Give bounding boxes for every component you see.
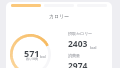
button[interactable]: カロリー (6, 2, 112, 68)
staticText: 2403 (68, 38, 88, 50)
staticText: カロリー (49, 13, 70, 19)
staticText: 残り消費 (26, 57, 39, 61)
staticText: 2974 (68, 60, 88, 68)
staticText: 消費量 (68, 53, 80, 58)
button[interactable] (11, 4, 41, 7)
staticText: 摂取カロリー (68, 31, 93, 36)
staticText: 571 (24, 47, 40, 59)
staticText: kcal (90, 45, 97, 50)
staticText: kcal (40, 55, 46, 59)
